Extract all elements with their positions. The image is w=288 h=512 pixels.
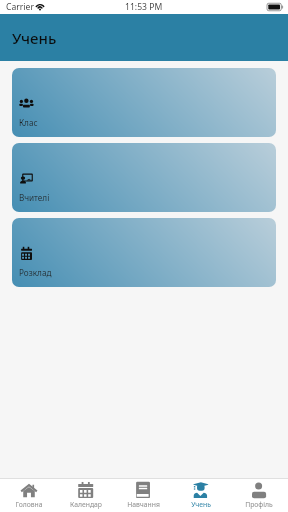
staticText: 11:53 PM (125, 1, 163, 13)
staticText: Розклад (19, 267, 52, 278)
button[interactable]: Учень (0, 14, 288, 61)
staticText: Календар (70, 500, 102, 509)
staticText: Навчання (127, 500, 160, 509)
staticText: Carrier (6, 1, 34, 13)
button[interactable]: Календар (57, 479, 114, 512)
staticText: Головна (15, 500, 43, 509)
staticText: Вчителі (19, 192, 50, 203)
button[interactable]: Головна (0, 479, 57, 512)
button[interactable]: Вчителі (12, 143, 276, 212)
button[interactable]: Навчання (114, 479, 172, 512)
staticText: Профіль (245, 500, 273, 509)
button[interactable]: Розклад (12, 218, 276, 287)
staticText: Учень (191, 500, 211, 509)
button[interactable]: Профіль (230, 479, 288, 512)
button[interactable]: Учень (172, 479, 230, 512)
staticText: Клас (19, 117, 38, 128)
button[interactable]: Клас (12, 68, 276, 137)
staticText: Учень (12, 28, 57, 48)
